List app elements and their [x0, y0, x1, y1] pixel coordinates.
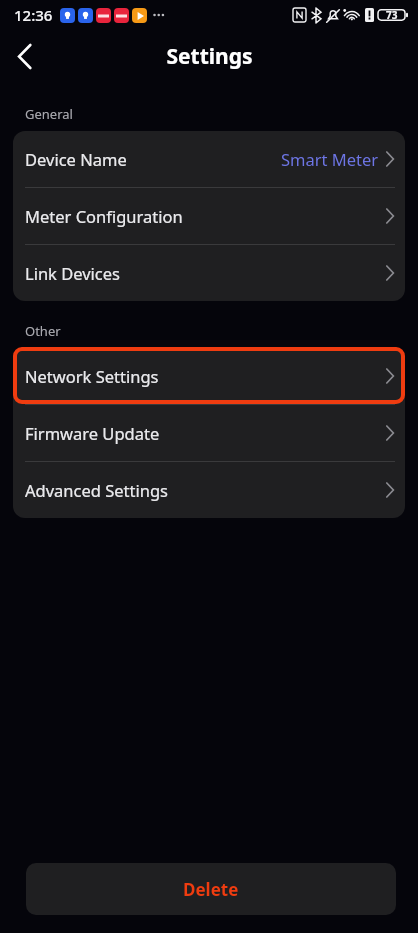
staticText: Firmware Update: [25, 422, 160, 444]
staticText: 73: [386, 8, 398, 22]
button[interactable]: Network Settings: [13, 347, 405, 404]
staticText: Meter Configuration: [25, 205, 183, 227]
button[interactable]: Device Name: [13, 131, 405, 187]
staticText: Advanced Settings: [25, 479, 168, 501]
button[interactable]: Firmware Update: [13, 405, 405, 461]
staticText: General: [25, 105, 73, 123]
staticText: Link Devices: [25, 262, 120, 284]
button[interactable]: Delete: [26, 863, 396, 915]
button[interactable]: Back: [0, 32, 48, 80]
staticText: 12:36: [14, 5, 53, 25]
staticText: Delete: [183, 878, 239, 901]
button[interactable]: Link Devices: [13, 245, 405, 301]
button[interactable]: Advanced Settings: [13, 462, 405, 518]
staticText: Settings: [166, 42, 253, 71]
staticText: Other: [25, 322, 61, 340]
button[interactable]: Meter Configuration: [13, 188, 405, 244]
staticText: Device Name: [25, 148, 127, 170]
staticText: Smart Meter: [281, 148, 379, 170]
staticText: Network Settings: [25, 365, 159, 387]
